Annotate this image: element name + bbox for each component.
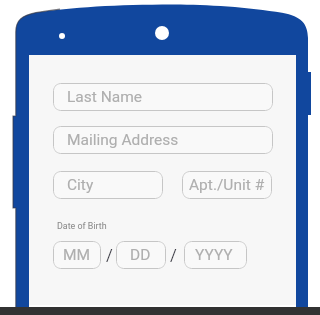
staticText: MM xyxy=(63,246,91,264)
button[interactable]: DD xyxy=(116,241,166,269)
button[interactable]: Last Name xyxy=(53,83,273,111)
staticText: Mailing Address xyxy=(67,131,179,149)
button[interactable]: Mailing Address xyxy=(53,126,273,154)
button[interactable]: MM xyxy=(53,241,101,269)
button[interactable]: YYYY xyxy=(184,241,247,269)
button[interactable]: City xyxy=(53,171,163,199)
staticText: / xyxy=(106,246,113,265)
staticText: City xyxy=(67,176,94,194)
button[interactable]: Apt./Unit # xyxy=(182,171,272,199)
staticText: Apt./Unit # xyxy=(189,176,265,194)
staticText: YYYY xyxy=(195,246,233,264)
staticText: DD xyxy=(130,246,151,264)
staticText: Date of Birth xyxy=(57,221,107,231)
staticText: / xyxy=(170,246,177,265)
staticText: Last Name xyxy=(67,88,142,106)
